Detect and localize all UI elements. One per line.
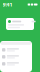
staticText: 9:41 (2, 1, 12, 8)
